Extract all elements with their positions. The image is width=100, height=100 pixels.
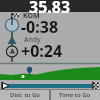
button[interactable]: Dist. to Go (0, 89, 50, 100)
staticText: +0:24 (21, 40, 63, 62)
staticText: KOM (23, 11, 40, 21)
staticText: Time to Go (59, 91, 91, 99)
staticText: A (10, 47, 15, 57)
staticText: 35.83 (29, 0, 71, 18)
staticText: -0:38 (21, 16, 59, 38)
staticText: Andy (24, 35, 41, 45)
button[interactable]: Time to Go (50, 89, 100, 100)
staticText: Dist. to Go (10, 91, 40, 99)
